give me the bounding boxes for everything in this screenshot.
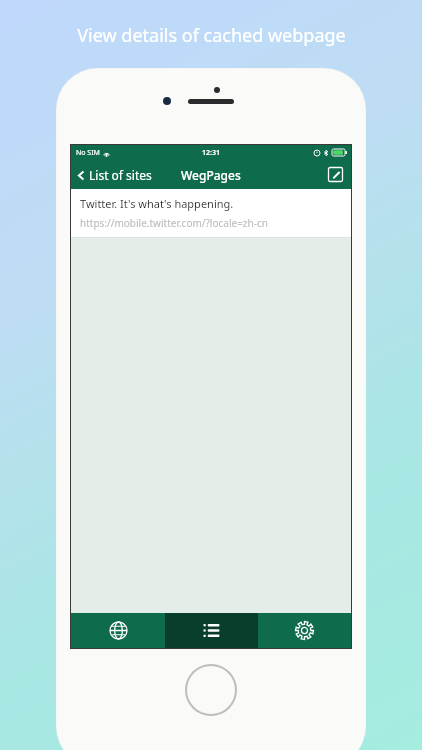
button[interactable]: Twitter. It's what's happening. — [71, 189, 351, 237]
button[interactable]: Compose — [320, 163, 351, 186]
staticText: No SIM — [76, 148, 100, 158]
button[interactable]: List of sites — [71, 163, 158, 187]
staticText: https://mobile.twitter.com/?locale=zh-cn — [80, 216, 268, 230]
staticText: Twitter. It's what's happening. — [80, 196, 234, 211]
staticText: WegPages — [181, 167, 241, 183]
button[interactable]: Settings — [258, 613, 351, 648]
button[interactable]: Browser — [71, 613, 165, 648]
staticText: 12:31 — [202, 148, 220, 158]
button[interactable]: List of sites — [165, 613, 258, 648]
staticText: View details of cached webpage — [77, 23, 346, 48]
staticText: List of sites — [89, 167, 152, 183]
